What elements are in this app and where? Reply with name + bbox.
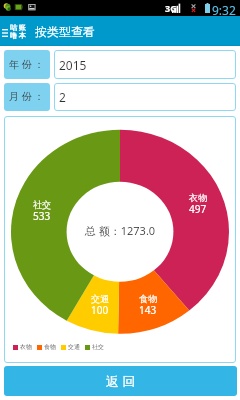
staticText: 533 (33, 209, 51, 223)
staticText: 143 (139, 303, 157, 317)
staticText: 交通 (68, 343, 80, 351)
staticText: 食物 (139, 293, 157, 304)
button[interactable]: Menu (0, 16, 10, 46)
button[interactable]: 2015 (54, 50, 236, 79)
staticText: 3G (165, 2, 177, 14)
staticText: 交通 (91, 293, 109, 304)
staticText: 按类型查看 (35, 24, 95, 39)
staticText: 2 (59, 89, 66, 105)
button[interactable]: 返 回 (4, 366, 237, 396)
staticText: 社交 (92, 343, 104, 351)
staticText: 2015 (59, 57, 87, 73)
staticText: 社交 (33, 199, 51, 210)
staticText: 月 份 ： (9, 89, 45, 103)
button[interactable]: 2 (54, 83, 236, 111)
staticText: 噜 本 (10, 31, 26, 41)
staticText: 总 额：1273.0 (0, 223, 240, 238)
staticText: 100 (91, 303, 109, 317)
staticText: 9:32 (212, 2, 236, 18)
staticText: 年 份 ： (9, 57, 45, 71)
staticText: 咕 账 (10, 23, 26, 33)
staticText: 衣物 (189, 192, 207, 203)
staticText: 返 回 (106, 372, 136, 390)
staticText: 食物 (44, 343, 56, 351)
staticText: 衣物 (20, 343, 32, 351)
staticText: 497 (189, 202, 207, 216)
